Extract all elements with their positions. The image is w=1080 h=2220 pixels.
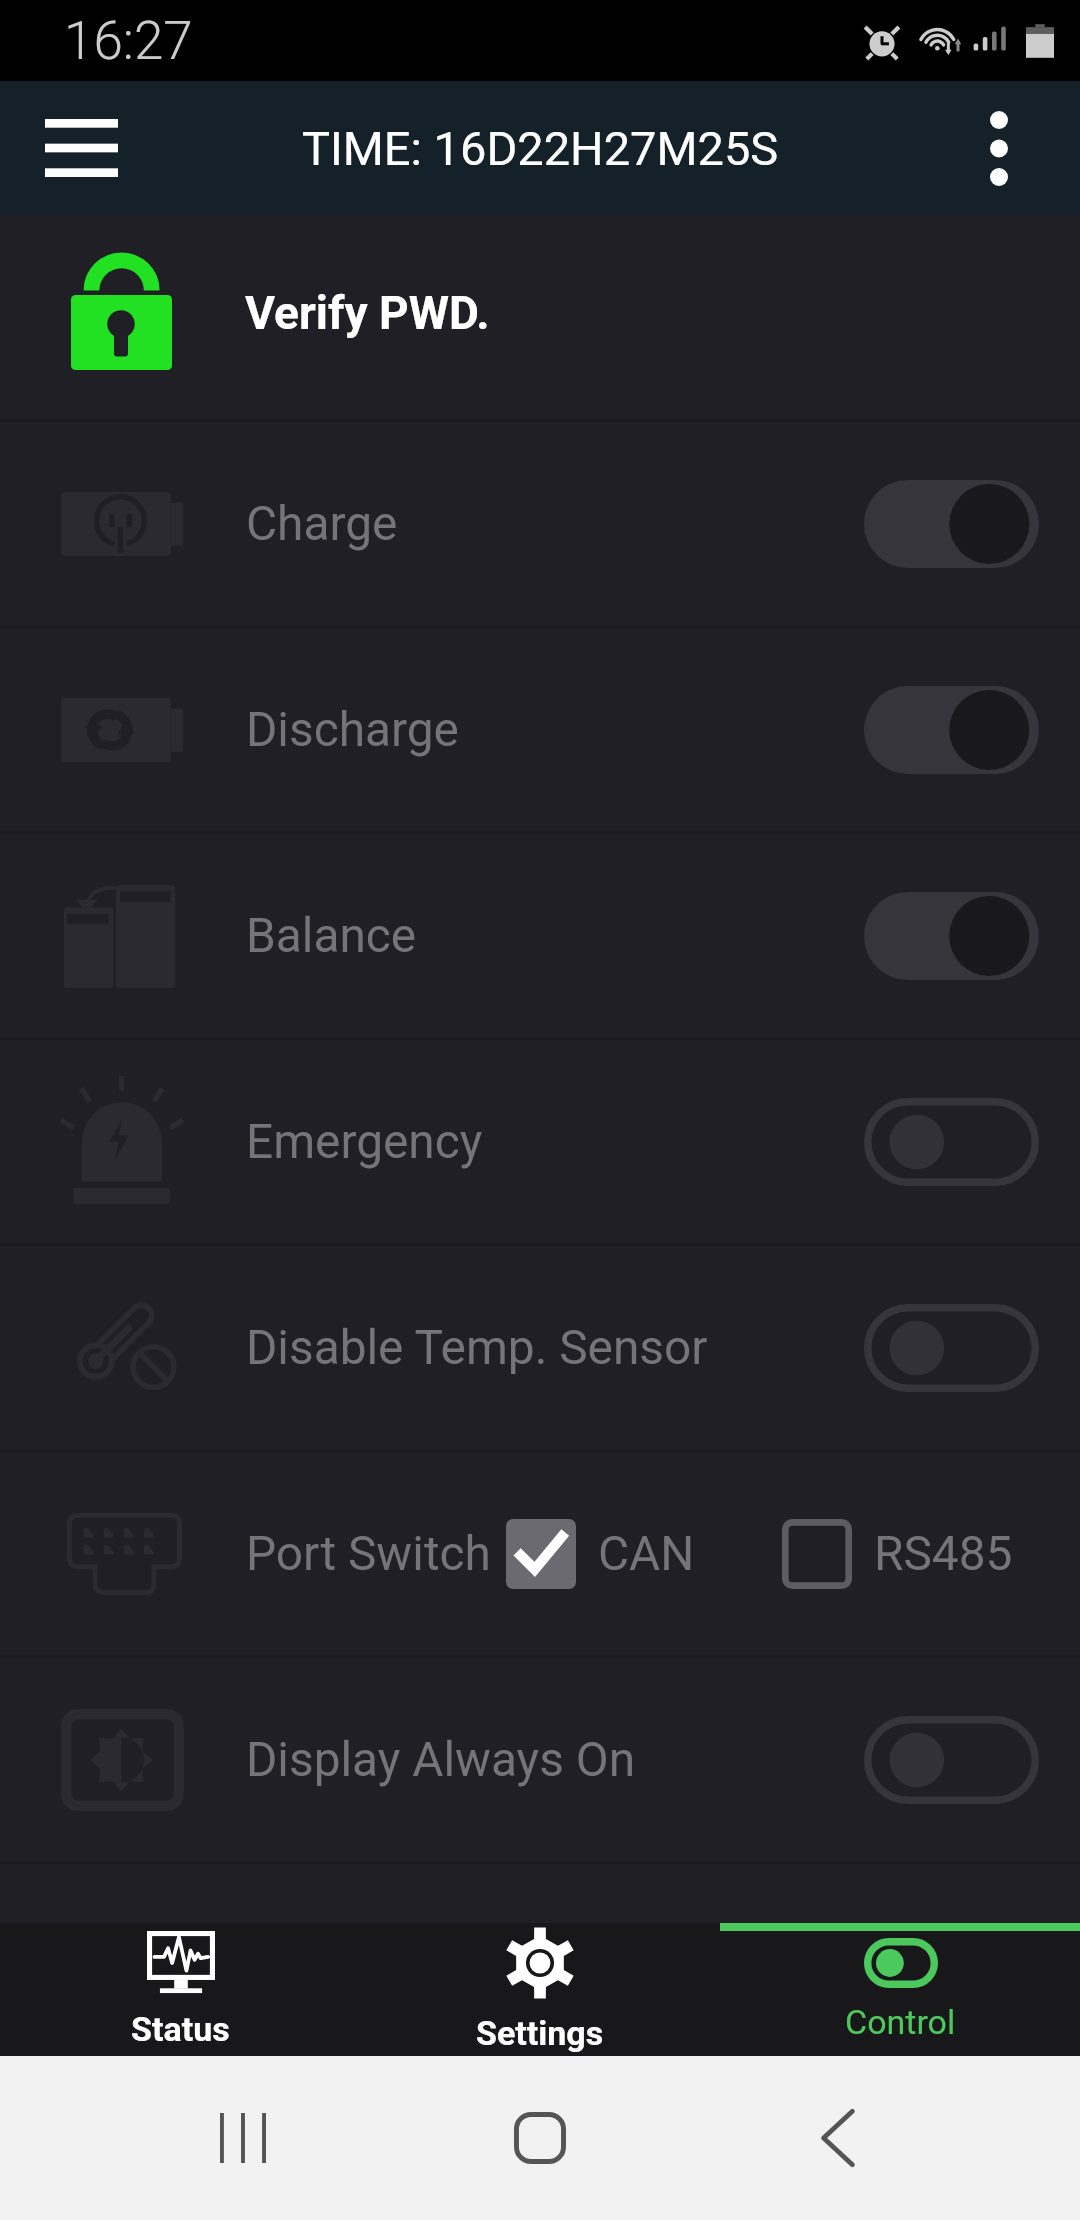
button[interactable]: Back bbox=[783, 2083, 893, 2193]
button[interactable]: Balance bbox=[0, 834, 1080, 1037]
staticText: CAN bbox=[598, 1526, 695, 1582]
button[interactable]: Disable Temp. Sensor bbox=[0, 1246, 1080, 1449]
button[interactable]: RS485 bbox=[782, 1519, 1013, 1589]
staticText: Display Always On bbox=[246, 1732, 636, 1788]
staticText: 16:27 bbox=[64, 10, 193, 72]
button[interactable]: Discharge bbox=[0, 628, 1080, 831]
staticText: Discharge bbox=[246, 702, 459, 758]
button[interactable]: Emergency bbox=[0, 1040, 1080, 1243]
staticText: Settings bbox=[476, 2013, 604, 2053]
button[interactable]: Settings bbox=[360, 1923, 720, 2056]
button[interactable]: Recent apps bbox=[188, 2083, 298, 2193]
staticText: Balance bbox=[246, 908, 417, 964]
staticText: Port Switch bbox=[246, 1526, 491, 1582]
staticText: TIME: 16D22H27M25S bbox=[302, 121, 779, 176]
staticText: Disable Temp. Sensor bbox=[246, 1320, 708, 1376]
button[interactable]: Open navigation menu bbox=[0, 81, 162, 215]
staticText: Charge bbox=[246, 496, 398, 552]
button[interactable]: Display Always On bbox=[0, 1658, 1080, 1861]
staticText: Status bbox=[131, 2009, 230, 2049]
button[interactable]: Control bbox=[720, 1923, 1080, 2056]
button[interactable]: More options bbox=[944, 81, 1054, 215]
staticText: Control bbox=[845, 2002, 956, 2042]
staticText: Verify PWD. bbox=[245, 286, 490, 340]
button[interactable]: Home bbox=[485, 2083, 595, 2193]
button[interactable]: Status bbox=[0, 1923, 360, 2056]
staticText: RS485 bbox=[874, 1526, 1013, 1582]
button[interactable]: Verify PWD. bbox=[0, 215, 1080, 419]
button[interactable]: Charge bbox=[0, 422, 1080, 625]
staticText: Emergency bbox=[246, 1114, 483, 1170]
button[interactable]: CAN bbox=[506, 1519, 695, 1589]
